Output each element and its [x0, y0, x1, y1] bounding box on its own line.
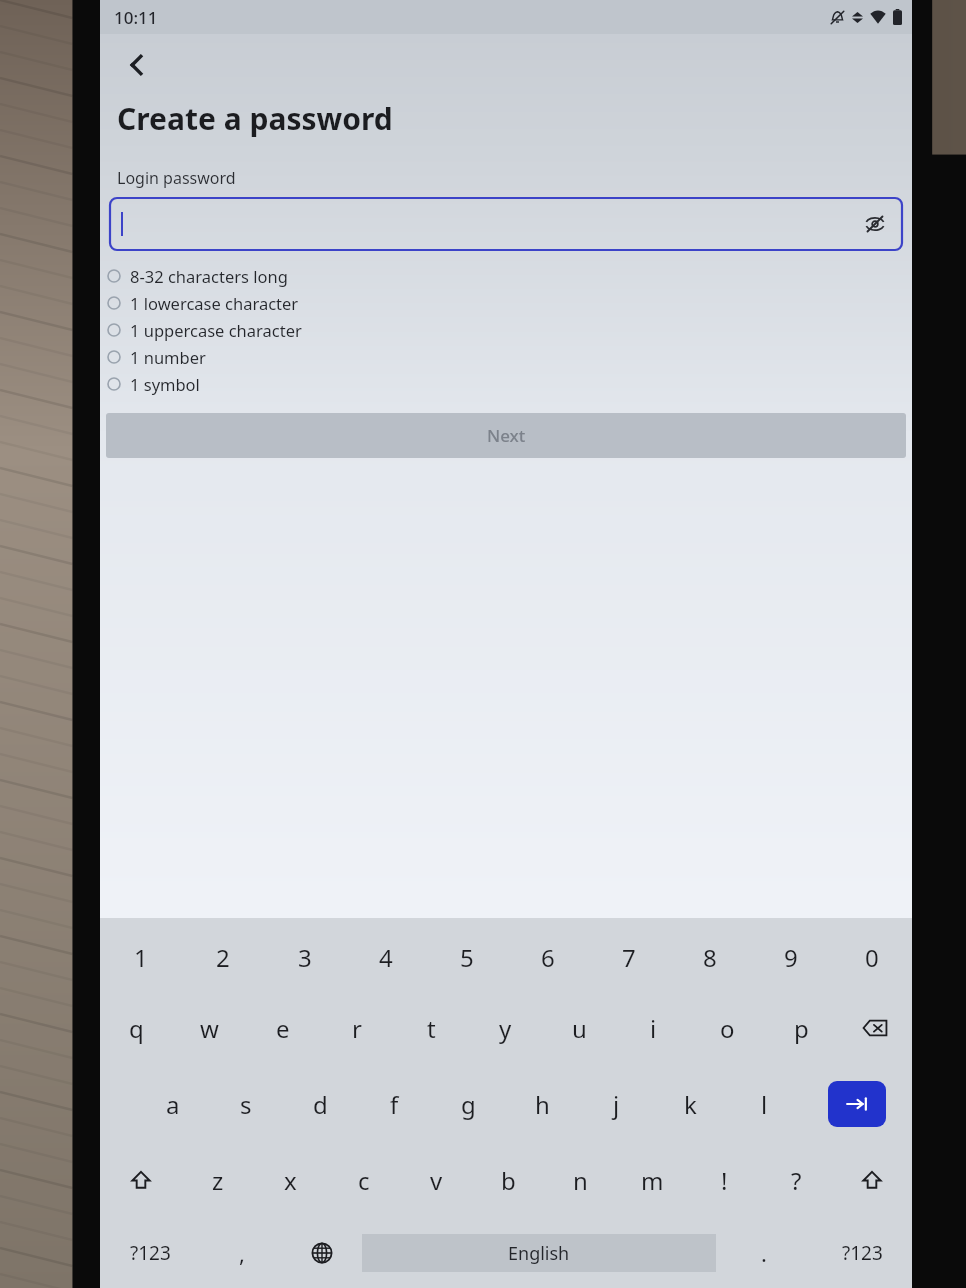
button[interactable]: a — [136, 1066, 209, 1142]
staticText: 1 symbol — [130, 373, 200, 395]
button[interactable]: w — [173, 990, 246, 1066]
button[interactable]: y — [468, 990, 542, 1066]
button[interactable]: n — [544, 1142, 616, 1218]
staticText: s — [240, 1088, 252, 1121]
staticText: q — [129, 1012, 144, 1045]
button[interactable]: f — [357, 1066, 431, 1142]
staticText: 8-32 characters long — [130, 265, 288, 287]
button[interactable]: b — [472, 1142, 544, 1218]
staticText: v — [430, 1164, 443, 1197]
button[interactable]: 3 — [264, 924, 345, 990]
button[interactable]: Back — [114, 42, 160, 88]
button[interactable]: d — [283, 1066, 357, 1142]
button[interactable]: Shift — [832, 1142, 912, 1218]
staticText: t — [427, 1012, 436, 1045]
staticText: 5 — [460, 941, 474, 974]
staticText: , — [239, 1238, 245, 1268]
staticText: 9 — [784, 941, 798, 974]
staticText: 1 number — [130, 346, 206, 368]
staticText: d — [313, 1088, 328, 1121]
button[interactable]: ?123 — [100, 1218, 201, 1288]
staticText: e — [276, 1012, 290, 1045]
button[interactable]: r — [320, 990, 394, 1066]
button[interactable]: p — [764, 990, 838, 1066]
staticText: . — [761, 1238, 767, 1268]
button[interactable]: ! — [688, 1142, 760, 1218]
staticText: 8 — [703, 941, 717, 974]
button[interactable]: v — [400, 1142, 472, 1218]
staticText: i — [650, 1012, 657, 1045]
button[interactable]: ? — [760, 1142, 832, 1218]
button[interactable]: . — [716, 1218, 812, 1288]
staticText: b — [501, 1164, 516, 1197]
staticText: 0 — [865, 941, 879, 974]
staticText: 1 lowercase character — [130, 292, 299, 314]
staticText: 6 — [541, 941, 555, 974]
button[interactable]: 1 — [100, 924, 182, 990]
staticText: m — [641, 1164, 664, 1197]
staticText: j — [613, 1088, 620, 1121]
button[interactable]: t — [394, 990, 468, 1066]
staticText: h — [535, 1088, 550, 1121]
staticText: f — [390, 1088, 399, 1121]
button[interactable]: x — [254, 1142, 327, 1218]
staticText: Next — [487, 424, 526, 447]
staticText: c — [358, 1164, 370, 1197]
button[interactable]: s — [209, 1066, 283, 1142]
button[interactable]: q — [100, 990, 173, 1066]
button[interactable]: c — [327, 1142, 400, 1218]
staticText: English — [508, 1241, 570, 1266]
staticText: x — [284, 1164, 297, 1197]
button[interactable]: l — [727, 1066, 801, 1142]
button[interactable]: 2 — [182, 924, 264, 990]
staticText: 4 — [379, 941, 393, 974]
button[interactable]: g — [431, 1066, 505, 1142]
button[interactable]: e — [246, 990, 320, 1066]
staticText: 7 — [622, 941, 636, 974]
button[interactable]: 5 — [426, 924, 507, 990]
button[interactable]: 4 — [345, 924, 426, 990]
button[interactable]: Show password — [110, 198, 902, 250]
button[interactable]: English — [362, 1234, 716, 1272]
staticText: Login password — [117, 167, 236, 189]
button[interactable]: 9 — [750, 924, 831, 990]
button[interactable]: , — [201, 1218, 282, 1288]
button[interactable]: u — [542, 990, 616, 1066]
staticText: 1 — [134, 941, 148, 974]
staticText: g — [461, 1088, 476, 1121]
staticText: y — [499, 1012, 512, 1045]
staticText: u — [572, 1012, 587, 1045]
button[interactable]: Change language — [282, 1218, 362, 1288]
staticText: ? — [791, 1164, 802, 1197]
staticText: ?123 — [842, 1240, 883, 1266]
staticText: Create a password — [117, 98, 393, 139]
staticText: r — [352, 1012, 362, 1045]
staticText: 2 — [216, 941, 230, 974]
button[interactable]: o — [690, 990, 764, 1066]
staticText: l — [761, 1088, 768, 1121]
button[interactable]: j — [579, 1066, 653, 1142]
button[interactable]: Shift — [100, 1142, 181, 1218]
staticText: a — [166, 1088, 180, 1121]
button[interactable]: ?123 — [812, 1218, 912, 1288]
button[interactable]: z — [181, 1142, 254, 1218]
button[interactable]: Next — [106, 413, 906, 458]
staticText: k — [684, 1088, 697, 1121]
button[interactable]: 0 — [831, 924, 912, 990]
staticText: z — [212, 1164, 224, 1197]
button[interactable]: k — [653, 1066, 727, 1142]
button[interactable]: h — [505, 1066, 579, 1142]
button[interactable]: i — [616, 990, 690, 1066]
button[interactable]: m — [616, 1142, 688, 1218]
staticText: w — [200, 1012, 219, 1045]
staticText: ! — [721, 1164, 728, 1197]
button[interactable]: 8 — [669, 924, 750, 990]
button[interactable]: 7 — [588, 924, 669, 990]
staticText: n — [573, 1164, 588, 1197]
staticText: p — [794, 1012, 809, 1045]
button[interactable]: Enter — [828, 1081, 886, 1127]
staticText: o — [720, 1012, 735, 1045]
button[interactable]: Backspace — [838, 990, 912, 1066]
button[interactable]: Show password — [858, 207, 892, 241]
button[interactable]: 6 — [507, 924, 588, 990]
